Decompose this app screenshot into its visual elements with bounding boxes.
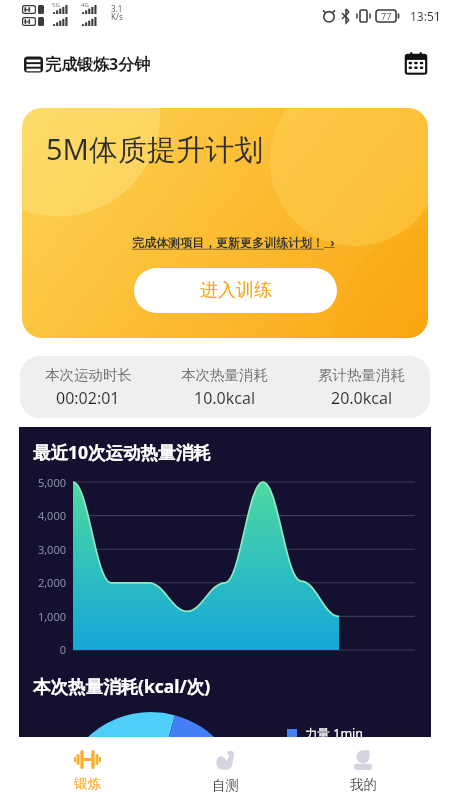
staticText: 本次运动时长 [45,366,132,384]
staticText: 20.0kcal [331,387,393,409]
staticText: 00:02:01 [56,387,120,409]
staticText: 4G [81,1,89,9]
button[interactable]: Calendar [399,47,433,81]
button[interactable]: 我的 [294,737,432,800]
staticText: 5,000 [37,475,66,490]
staticText: 自测 [212,777,239,794]
staticText: 最近10次运动热量消耗 [33,440,211,464]
button[interactable]: 自测 [156,737,294,800]
button[interactable]: 5M体质提升计划 [22,108,428,338]
staticText: 完成体测项目，更新更多训练计划！ › [132,234,335,250]
staticText: 10.0kcal [194,387,256,409]
staticText: 2,000 [37,575,66,590]
staticText: 3,000 [37,542,66,557]
staticText: 本次热量消耗(kcal/次) [33,674,211,698]
staticText: 77 [381,10,392,22]
staticText: 完成锻炼3分钟 [45,53,151,75]
button[interactable]: 进入训练 [134,268,337,313]
staticText: 本次热量消耗 [181,366,268,384]
button[interactable]: 累计热量消耗 [293,356,430,418]
button[interactable]: 锻炼 [18,737,156,800]
staticText: 累计热量消耗 [318,366,405,384]
staticText: 5G [52,1,60,9]
staticText: 4,000 [37,508,66,523]
staticText: 13:51 [410,8,441,24]
button[interactable]: 本次运动时长 [20,356,156,418]
staticText: 锻炼 [74,775,101,792]
staticText: 1,000 [37,609,66,624]
staticText: 0 [59,642,66,657]
button[interactable]: 本次热量消耗 [156,356,293,418]
staticText: 力量 1min [305,725,364,742]
staticText: 5M体质提升计划 [46,129,263,169]
staticText: 进入训练 [200,279,272,302]
staticText: 我的 [350,776,377,793]
staticText: 3.1 K/s [111,3,123,22]
